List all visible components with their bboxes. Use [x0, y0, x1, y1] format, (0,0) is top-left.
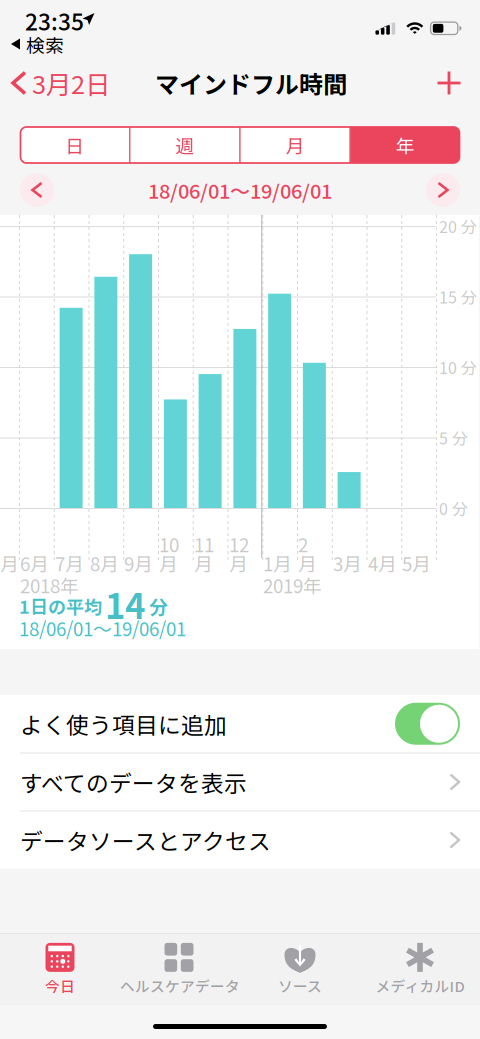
staticText: 10	[159, 530, 179, 557]
button[interactable]: すべてのデータを表示	[0, 753, 480, 810]
staticText: 20 分	[439, 214, 477, 238]
staticText: ヘルスケアデータ	[120, 975, 240, 996]
staticText: 年	[396, 131, 415, 158]
staticText: 15 分	[439, 285, 477, 308]
button[interactable]: 今日	[0, 934, 120, 1005]
staticText: 8月	[90, 549, 119, 576]
button[interactable]: 週	[131, 127, 239, 163]
staticText: 月	[286, 131, 305, 158]
staticText: 月	[0, 549, 19, 576]
button[interactable]: メディカルID	[360, 934, 480, 1005]
staticText: 7月	[55, 549, 84, 576]
button[interactable]: 3月2日	[0, 60, 120, 106]
staticText: 11	[194, 530, 214, 557]
staticText: 3月2日	[32, 65, 110, 101]
staticText: ソース	[278, 975, 322, 996]
button[interactable]: 日	[20, 127, 129, 163]
staticText: 10 分	[439, 355, 477, 379]
staticText: 週	[175, 131, 194, 158]
staticText: 月	[194, 549, 213, 576]
button[interactable]: よく使う項目に追加	[0, 695, 480, 752]
button[interactable]: 前の期間	[15, 168, 59, 212]
staticText: 23:35	[25, 4, 84, 37]
staticText: 6月	[20, 549, 49, 576]
staticText: 月	[229, 549, 248, 576]
staticText: 0 分	[439, 496, 468, 520]
staticText: 5月	[402, 549, 431, 576]
staticText: 2	[298, 530, 308, 557]
staticText: 分	[149, 592, 168, 619]
staticText: データソースとアクセス	[20, 824, 271, 856]
staticText: 今日	[45, 975, 75, 996]
button[interactable]: 追加	[426, 60, 472, 106]
staticText: 2019年	[263, 571, 322, 598]
staticText: 日	[65, 131, 84, 158]
button[interactable]: ソース	[240, 934, 360, 1005]
staticText: 1月	[263, 549, 292, 576]
staticText: 月	[298, 549, 317, 576]
button[interactable]: データソースとアクセス	[0, 811, 480, 868]
button[interactable]: 月	[241, 127, 349, 163]
staticText: 5 分	[439, 426, 468, 449]
staticText: 18/06/01〜19/06/01	[148, 175, 332, 204]
staticText: 1日の平均	[19, 593, 102, 619]
staticText: 14	[105, 579, 145, 629]
staticText: メディカルID	[375, 975, 464, 996]
staticText: 9月	[124, 549, 153, 576]
staticText: 検索	[26, 31, 64, 58]
staticText: 12	[229, 530, 249, 557]
staticText: マインドフル時間	[155, 66, 347, 100]
staticText: すべてのデータを表示	[20, 766, 247, 798]
button[interactable]: ヘルスケアデータ	[120, 934, 240, 1005]
button[interactable]: 次の期間	[421, 168, 465, 212]
staticText: 3月	[333, 549, 362, 576]
staticText: 4月	[368, 549, 397, 576]
staticText: 月	[159, 549, 178, 576]
button[interactable]: 年	[351, 127, 459, 163]
staticText: 18/06/01〜19/06/01	[19, 614, 186, 641]
staticText: よく使う項目に追加	[20, 707, 227, 740]
staticText: 2018年	[20, 571, 79, 598]
